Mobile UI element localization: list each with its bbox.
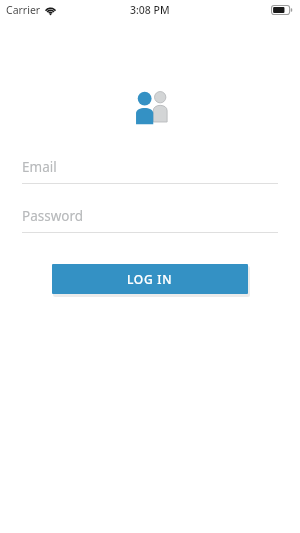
button[interactable]: Email: [22, 158, 278, 184]
button[interactable]: Password: [22, 207, 278, 233]
other: App logo: [131, 86, 173, 126]
staticText: Password: [22, 207, 84, 225]
staticText: LOG IN: [127, 271, 173, 287]
staticText: Email: [22, 158, 57, 176]
staticText: Carrier: [6, 3, 41, 17]
staticText: 3:08 PM: [130, 3, 170, 17]
button[interactable]: LOG IN: [52, 264, 248, 294]
